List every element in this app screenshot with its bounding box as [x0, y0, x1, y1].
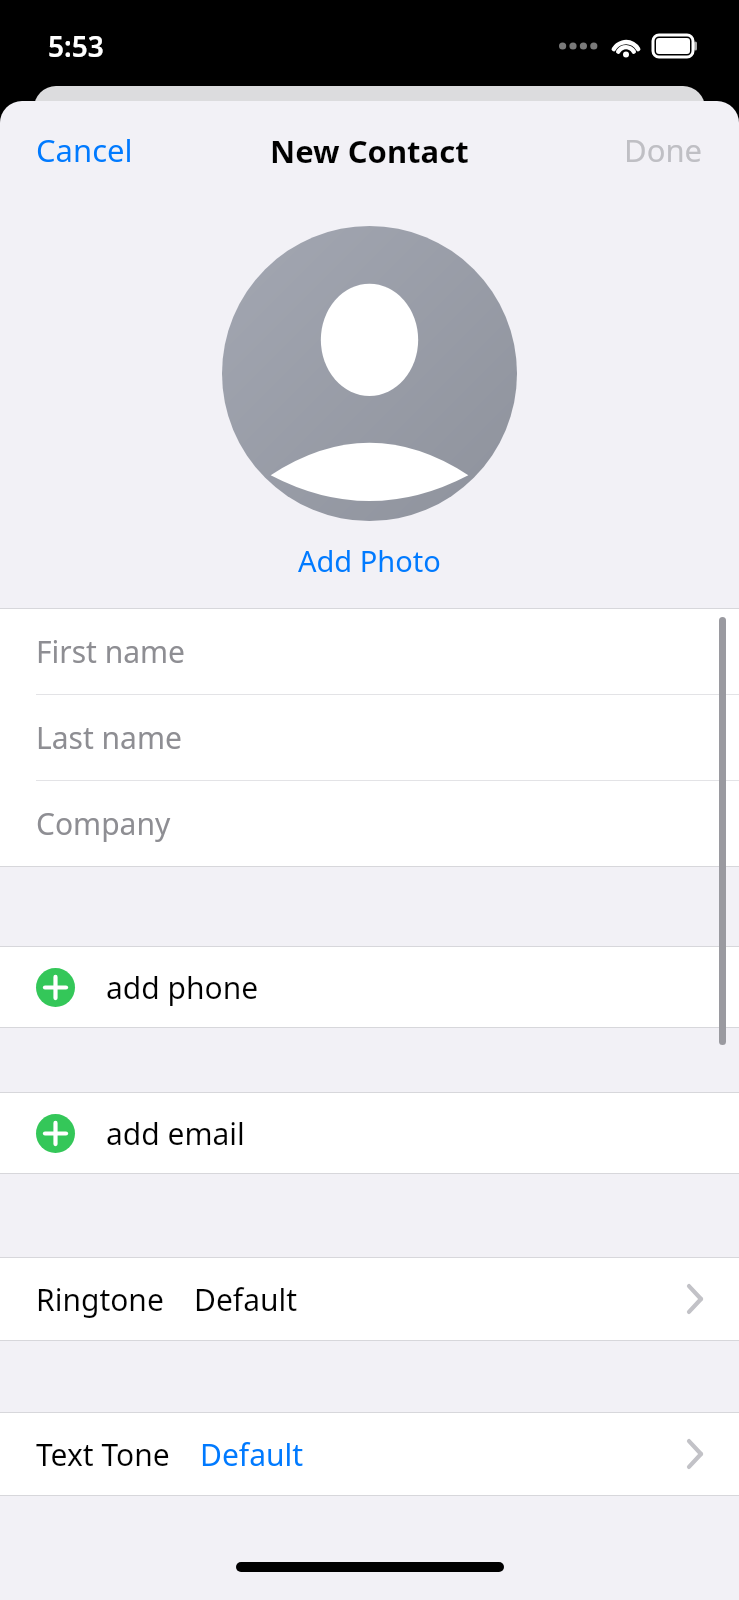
- staticText: First name: [36, 631, 186, 672]
- button[interactable]: Add Photo: [276, 533, 463, 588]
- button[interactable]: add email: [0, 1093, 739, 1173]
- button[interactable]: Add Photo: [222, 226, 517, 521]
- staticText: add email: [106, 1113, 245, 1154]
- button[interactable]: Cancel: [0, 119, 149, 181]
- staticText: New Contact: [270, 130, 469, 172]
- staticText: Done: [624, 129, 703, 171]
- staticText: Ringtone: [36, 1279, 164, 1320]
- button[interactable]: Last name: [0, 695, 739, 780]
- button[interactable]: Text Tone: [0, 1413, 739, 1495]
- staticText: add phone: [106, 967, 259, 1008]
- staticText: 5:53: [48, 27, 104, 65]
- staticText: Default: [200, 1434, 304, 1475]
- button[interactable]: Ringtone: [0, 1258, 739, 1340]
- staticText: Text Tone: [36, 1434, 170, 1475]
- button[interactable]: add phone: [0, 947, 739, 1027]
- staticText: Last name: [36, 717, 182, 758]
- staticText: Company: [36, 803, 171, 844]
- button[interactable]: First name: [0, 609, 739, 694]
- button[interactable]: Done: [608, 119, 739, 181]
- staticText: Add Photo: [298, 541, 441, 580]
- staticText: Default: [194, 1279, 298, 1320]
- staticText: Cancel: [36, 129, 133, 171]
- button[interactable]: Company: [0, 781, 739, 866]
